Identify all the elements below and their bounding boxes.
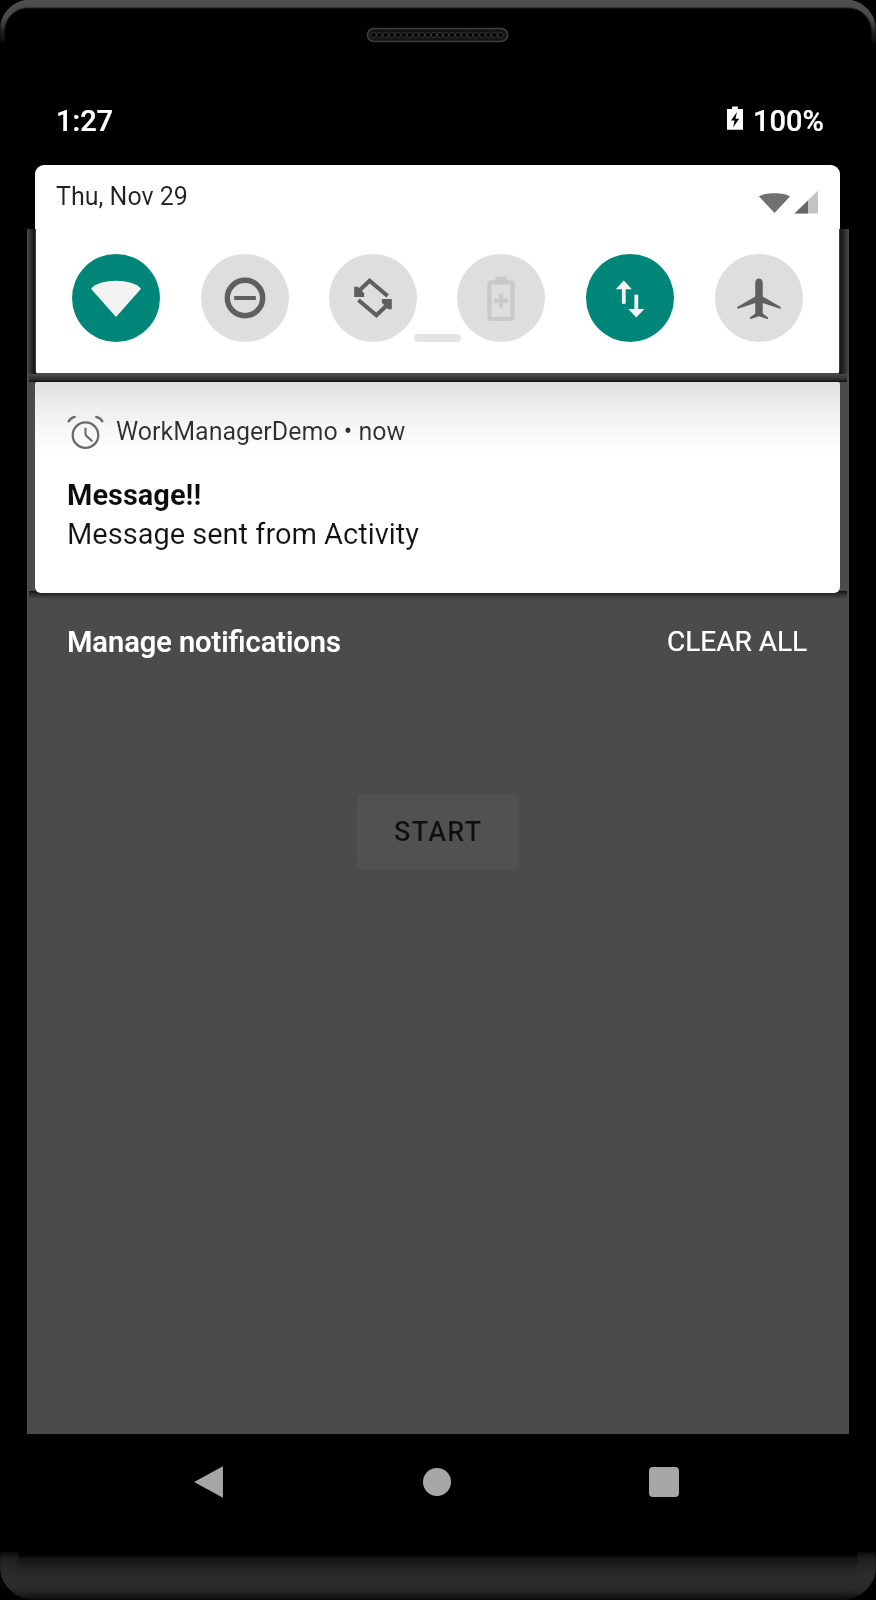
button[interactable]: Mobile data <box>586 254 674 342</box>
button[interactable]: Airplane mode <box>715 254 803 342</box>
button[interactable]: Wi-Fi <box>72 254 160 342</box>
staticText: START <box>394 816 483 848</box>
button[interactable]: Auto-rotate <box>329 254 417 342</box>
staticText: 100% <box>753 104 824 138</box>
staticText: Manage notifications <box>67 625 341 659</box>
button[interactable]: Home <box>423 1468 451 1496</box>
staticText: WorkManagerDemo • now <box>116 417 406 446</box>
staticText: Thu, Nov 29 <box>56 182 188 211</box>
button[interactable]: Recent apps <box>649 1467 679 1497</box>
staticText: 1:27 <box>56 104 114 138</box>
staticText: CLEAR ALL <box>667 625 808 658</box>
button[interactable]: Back <box>193 1464 224 1499</box>
button[interactable]: START <box>357 794 519 870</box>
button[interactable]: Battery Saver <box>457 254 545 342</box>
button[interactable]: Manage notifications <box>39 611 369 673</box>
button[interactable]: WorkManagerDemo • now <box>35 382 840 593</box>
staticText: Message!! <box>67 478 202 512</box>
staticText: Message sent from Activity <box>67 517 420 551</box>
button[interactable]: CLEAR ALL <box>639 610 836 672</box>
button[interactable]: Do not disturb <box>201 254 289 342</box>
